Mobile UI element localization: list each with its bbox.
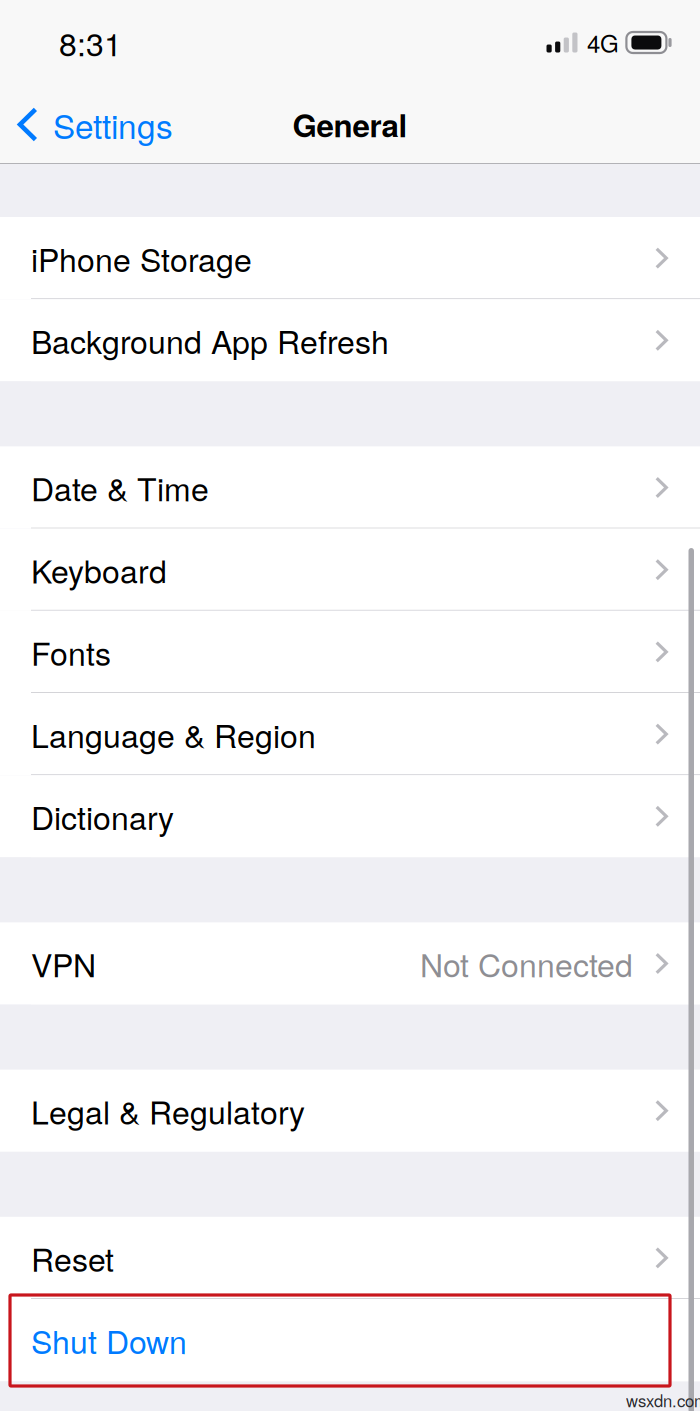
button[interactable]: Fonts: [0, 611, 700, 693]
staticText: Not Connected: [420, 941, 633, 986]
staticText: Reset: [31, 1235, 114, 1281]
staticText: Fonts: [31, 629, 111, 675]
button[interactable]: VPN: [0, 922, 700, 1005]
staticText: 4G: [587, 25, 619, 60]
staticText: VPN: [31, 941, 96, 986]
staticText: iPhone Storage: [31, 235, 252, 281]
staticText: Dictionary: [31, 793, 174, 839]
staticText: Date & Time: [31, 465, 209, 510]
button[interactable]: Settings: [0, 91, 173, 158]
button[interactable]: Date & Time: [0, 446, 700, 529]
button[interactable]: iPhone Storage: [0, 217, 700, 299]
button[interactable]: Dictionary: [0, 775, 700, 857]
button[interactable]: Shut Down: [0, 1299, 700, 1381]
button[interactable]: Language & Region: [0, 693, 700, 775]
staticText: Language & Region: [31, 711, 316, 757]
button[interactable]: Reset: [0, 1217, 700, 1299]
staticText: Legal & Regulatory: [31, 1088, 305, 1134]
staticText: wsxdn.com: [626, 1388, 700, 1411]
staticText: Shut Down: [31, 1317, 187, 1363]
staticText: Keyboard: [31, 547, 167, 593]
staticText: General: [292, 102, 407, 147]
button[interactable]: Keyboard: [0, 529, 700, 611]
staticText: Settings: [53, 101, 173, 148]
button[interactable]: Legal & Regulatory: [0, 1070, 700, 1152]
button[interactable]: Background App Refresh: [0, 299, 700, 381]
staticText: Background App Refresh: [31, 317, 389, 363]
staticText: 8:31: [59, 20, 122, 65]
